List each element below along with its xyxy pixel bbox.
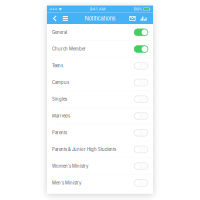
button[interactable]: Women's Ministry (47, 158, 153, 175)
staticText: General (52, 30, 67, 35)
button[interactable]: Campus (47, 74, 153, 91)
button[interactable]: Menu (59, 13, 72, 24)
staticText: Notifications (84, 15, 115, 22)
staticText: Parents & Junior High Students (52, 147, 116, 152)
button[interactable]: General (47, 24, 153, 41)
staticText: Marrieds (52, 113, 70, 119)
button[interactable]: Parents & Junior High Students (47, 141, 153, 158)
button[interactable]: Marrieds (47, 108, 153, 125)
button[interactable]: Teens (47, 58, 153, 74)
staticText: Parents (52, 130, 67, 135)
button[interactable]: Statistics (138, 13, 149, 24)
staticText: Women's Ministry (52, 164, 88, 169)
button[interactable]: Church Member (47, 41, 153, 58)
button[interactable]: Messages (127, 13, 138, 24)
staticText: 100% (133, 7, 142, 11)
button[interactable]: Men's Ministry (47, 175, 153, 191)
staticText: Singles (52, 97, 67, 102)
staticText: 9:41 AM (90, 7, 106, 11)
staticText: Campus (52, 80, 69, 85)
button[interactable]: Parents (47, 125, 153, 141)
staticText: Teens (52, 63, 63, 68)
button[interactable]: Singles (47, 91, 153, 108)
staticText: Church Member (52, 46, 86, 52)
button[interactable]: Back (51, 13, 59, 24)
staticText: Men's Ministry (52, 180, 81, 185)
